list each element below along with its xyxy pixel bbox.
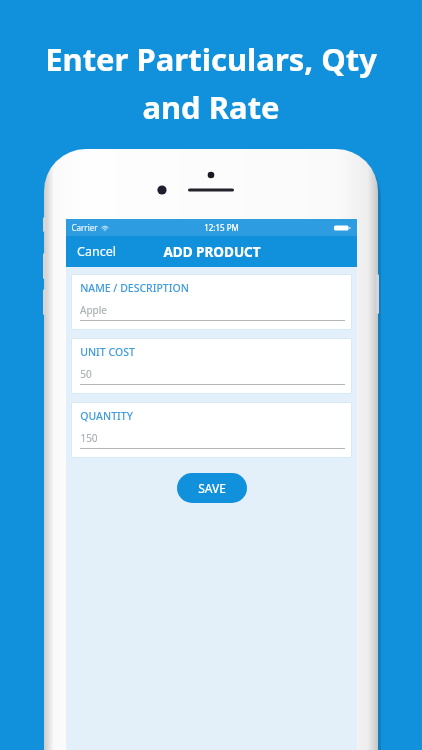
staticText: Enter Particulars, Qty <box>45 38 377 80</box>
staticText: and Rate <box>142 86 280 128</box>
staticText: Apple <box>80 303 107 317</box>
other: Wi-Fi <box>101 224 109 232</box>
other: Battery <box>334 224 351 232</box>
button[interactable]: NAME / DESCRIPTION <box>71 274 352 330</box>
staticText: QUANTITY <box>80 409 133 423</box>
button[interactable]: Cancel <box>69 238 124 265</box>
staticText: 12:15 PM <box>204 222 239 233</box>
staticText: UNIT COST <box>80 345 135 359</box>
staticText: SAVE <box>198 480 226 496</box>
button[interactable]: UNIT COST <box>71 338 352 394</box>
staticText: Carrier <box>71 222 98 233</box>
staticText: ADD PRODUCT <box>163 243 261 261</box>
button[interactable]: SAVE <box>177 473 247 503</box>
staticText: 50 <box>80 367 92 381</box>
staticText: Cancel <box>77 243 116 260</box>
button[interactable]: QUANTITY <box>71 402 352 458</box>
staticText: 150 <box>80 431 98 445</box>
staticText: NAME / DESCRIPTION <box>80 281 189 295</box>
